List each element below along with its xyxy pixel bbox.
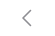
button[interactable]: Back [0,0,55,36]
